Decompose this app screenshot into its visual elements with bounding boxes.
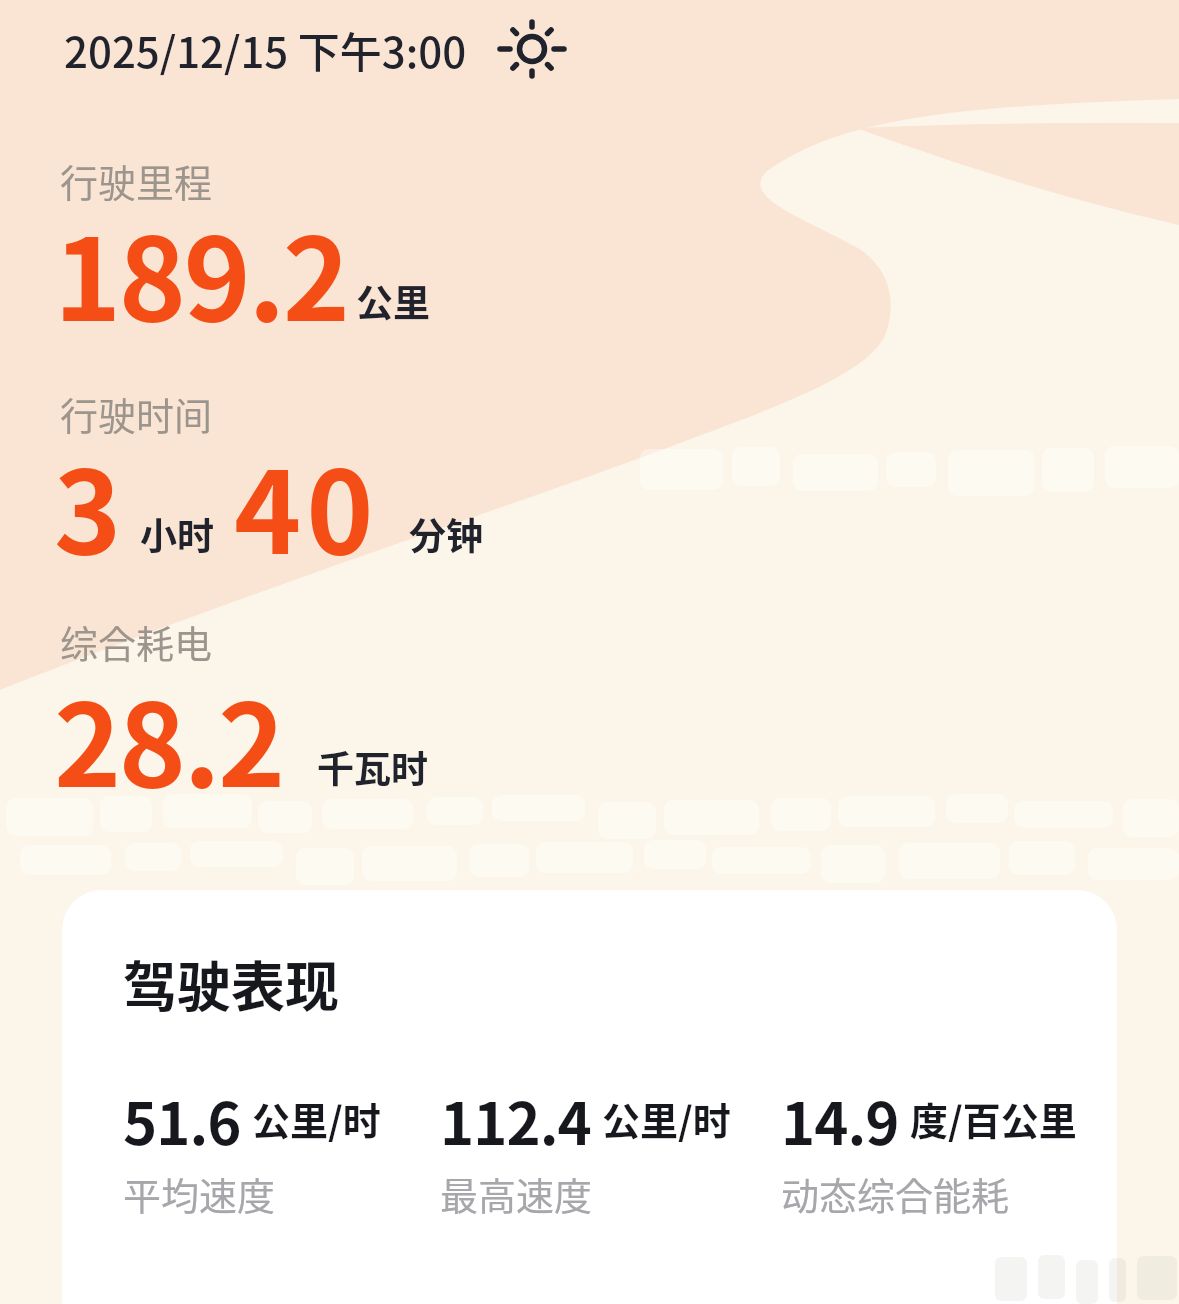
staticText: 千瓦时 <box>317 740 428 794</box>
staticText: 公里/时 <box>602 1091 731 1146</box>
staticText: 40 <box>234 422 379 587</box>
staticText: 2025/12/15 下午3:00 <box>64 19 467 80</box>
staticText: 驾驶表现 <box>123 944 339 1022</box>
staticText: 公里/时 <box>252 1091 381 1146</box>
staticText: 51.6 <box>123 1078 241 1162</box>
staticText: 3 <box>54 422 122 587</box>
staticText: 行驶时间 <box>60 386 213 441</box>
staticText: 度/百公里 <box>910 1091 1077 1146</box>
staticText: 最高速度 <box>440 1166 593 1221</box>
staticText: 分钟 <box>409 507 483 561</box>
staticText: 综合耗电 <box>60 614 213 669</box>
staticText: 112.4 <box>440 1078 591 1162</box>
staticText: 小时 <box>140 507 214 561</box>
staticText: 平均速度 <box>123 1166 276 1221</box>
staticText: 28.2 <box>54 655 283 820</box>
staticText: 14.9 <box>781 1078 899 1162</box>
staticText: 公里 <box>356 274 430 328</box>
staticText: 行驶里程 <box>60 153 213 208</box>
staticText: 动态综合能耗 <box>781 1166 1010 1221</box>
button[interactable]: 驾驶表现 <box>62 890 1117 1304</box>
staticText: 189.2 <box>54 189 348 354</box>
button[interactable]: 2025/12/15 下午3:00 <box>64 16 565 82</box>
